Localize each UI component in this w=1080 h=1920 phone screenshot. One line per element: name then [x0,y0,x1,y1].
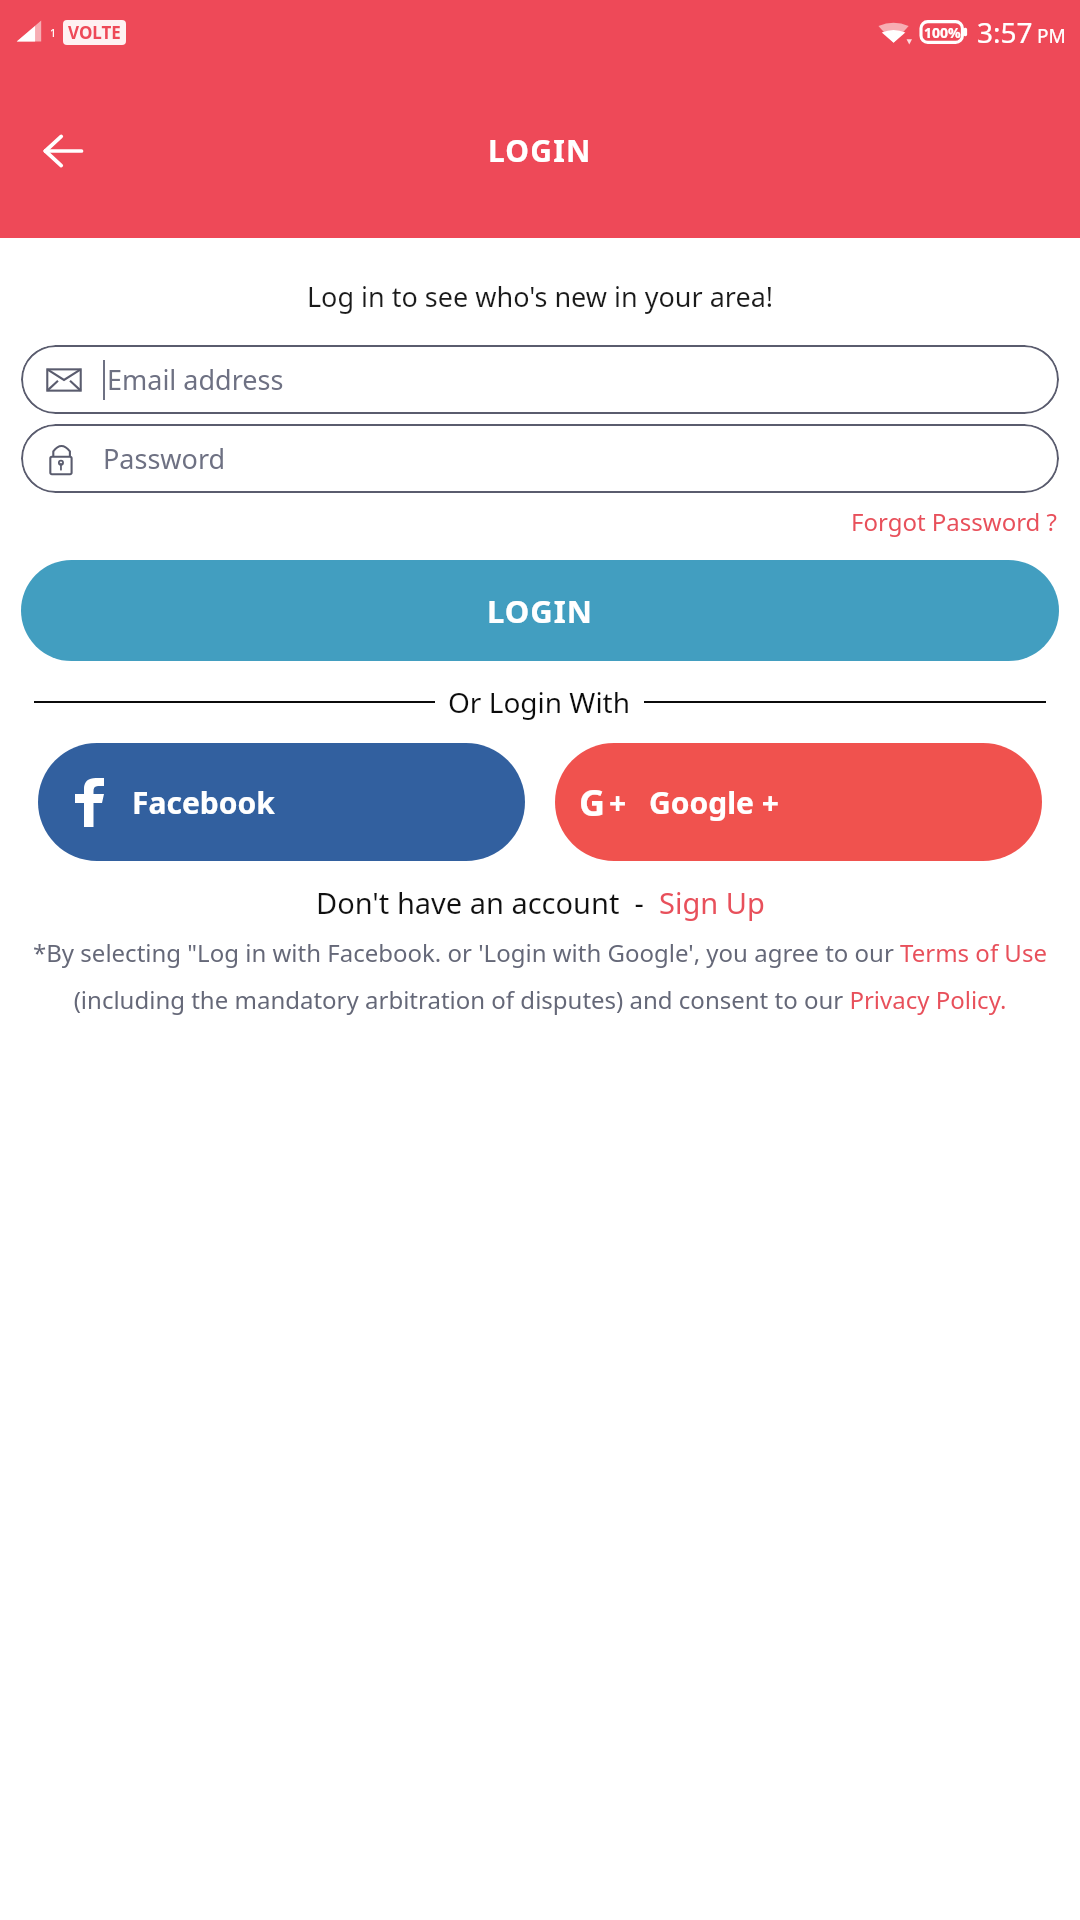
staticText: LOGIN [488,130,592,171]
button[interactable]: Sign Up [659,883,765,922]
button[interactable]: *By selecting "Log in with Facebook. or … [26,936,1054,969]
staticText: VOLTE [68,21,121,44]
staticText: G [579,778,606,827]
button[interactable]: (including the mandatory arbitration of … [26,983,1054,1016]
button[interactable]: Facebook [38,743,525,861]
staticText: Log in to see who's new in your area! [0,278,1080,315]
button[interactable]: G [555,743,1042,861]
staticText: Don't have an account - [316,883,659,922]
staticText: PM [1037,23,1066,49]
staticText: 3:57 [977,13,1033,51]
staticText: Password [103,440,226,477]
button[interactable]: Back [30,118,96,184]
staticText: + [609,782,627,823]
button[interactable]: LOGIN [21,560,1059,661]
staticText: Or Login With [448,683,631,721]
staticText: 1 [50,25,57,40]
staticText: Facebook [132,782,275,823]
staticText: Email address [107,361,284,398]
staticText: Google + [649,782,779,823]
button[interactable]: Forgot Password ? [847,501,1062,542]
staticText: LOGIN [487,590,593,632]
button[interactable]: Email address [21,345,1059,414]
staticText: Forgot Password ? [851,505,1058,538]
button[interactable]: Password [21,424,1059,493]
staticText: 100% [924,23,961,42]
staticText: Sign Up [659,883,765,922]
